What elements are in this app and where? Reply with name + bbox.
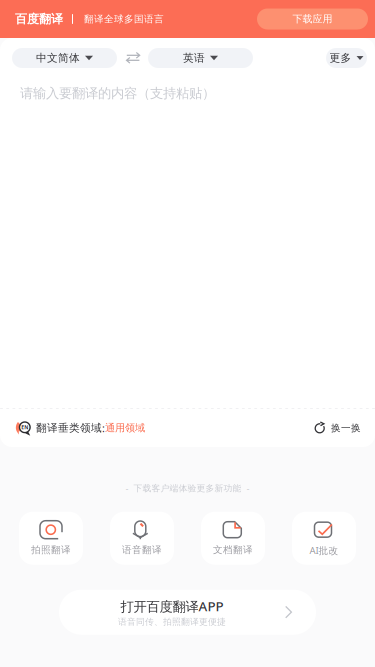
staticText: - [246,482,249,495]
staticText: 中文简体 [36,51,80,65]
staticText: 请输入要翻译的内容（支持粘贴） [20,85,215,102]
staticText: 拍照翻译 [31,544,71,556]
button[interactable]: 拍照翻译 [19,512,83,565]
button[interactable]: 英语 [148,48,253,68]
button[interactable]: EN [15,421,145,435]
staticText: 更多 [329,51,351,65]
button[interactable]: 交换语言 [126,50,141,65]
button[interactable]: AI批改 [292,512,356,565]
staticText: 英语 [183,51,205,65]
staticText: 语音同传、拍照翻译更便捷 [118,616,226,627]
staticText: 语音翻译 [122,544,162,556]
staticText: AI批改 [309,544,338,557]
staticText: 通用领域 [105,422,145,434]
staticText: 文档翻译 [213,544,253,556]
button[interactable]: 文档翻译 [201,512,265,565]
staticText: 打开百度翻译APP [120,597,223,615]
staticText: EN [21,424,28,431]
button[interactable]: 打开百度翻译APP [59,590,316,635]
button[interactable]: 中文简体 [12,48,117,68]
staticText: 下载客户端体验更多新功能 [133,483,241,494]
button[interactable]: 更多 [326,48,367,68]
staticText: - [125,482,128,495]
staticText: 下载应用 [292,13,332,25]
staticText: 翻译全球多国语言 [84,13,164,25]
staticText: 翻译垂类领域 [36,421,102,435]
staticText: 百度翻译 [15,11,63,26]
staticText: 换一换 [331,422,361,434]
staticText: : [102,421,105,435]
button[interactable]: 下载应用 [257,8,368,29]
button[interactable]: 换一换 [314,422,361,434]
button[interactable]: 语音翻译 [110,512,174,565]
